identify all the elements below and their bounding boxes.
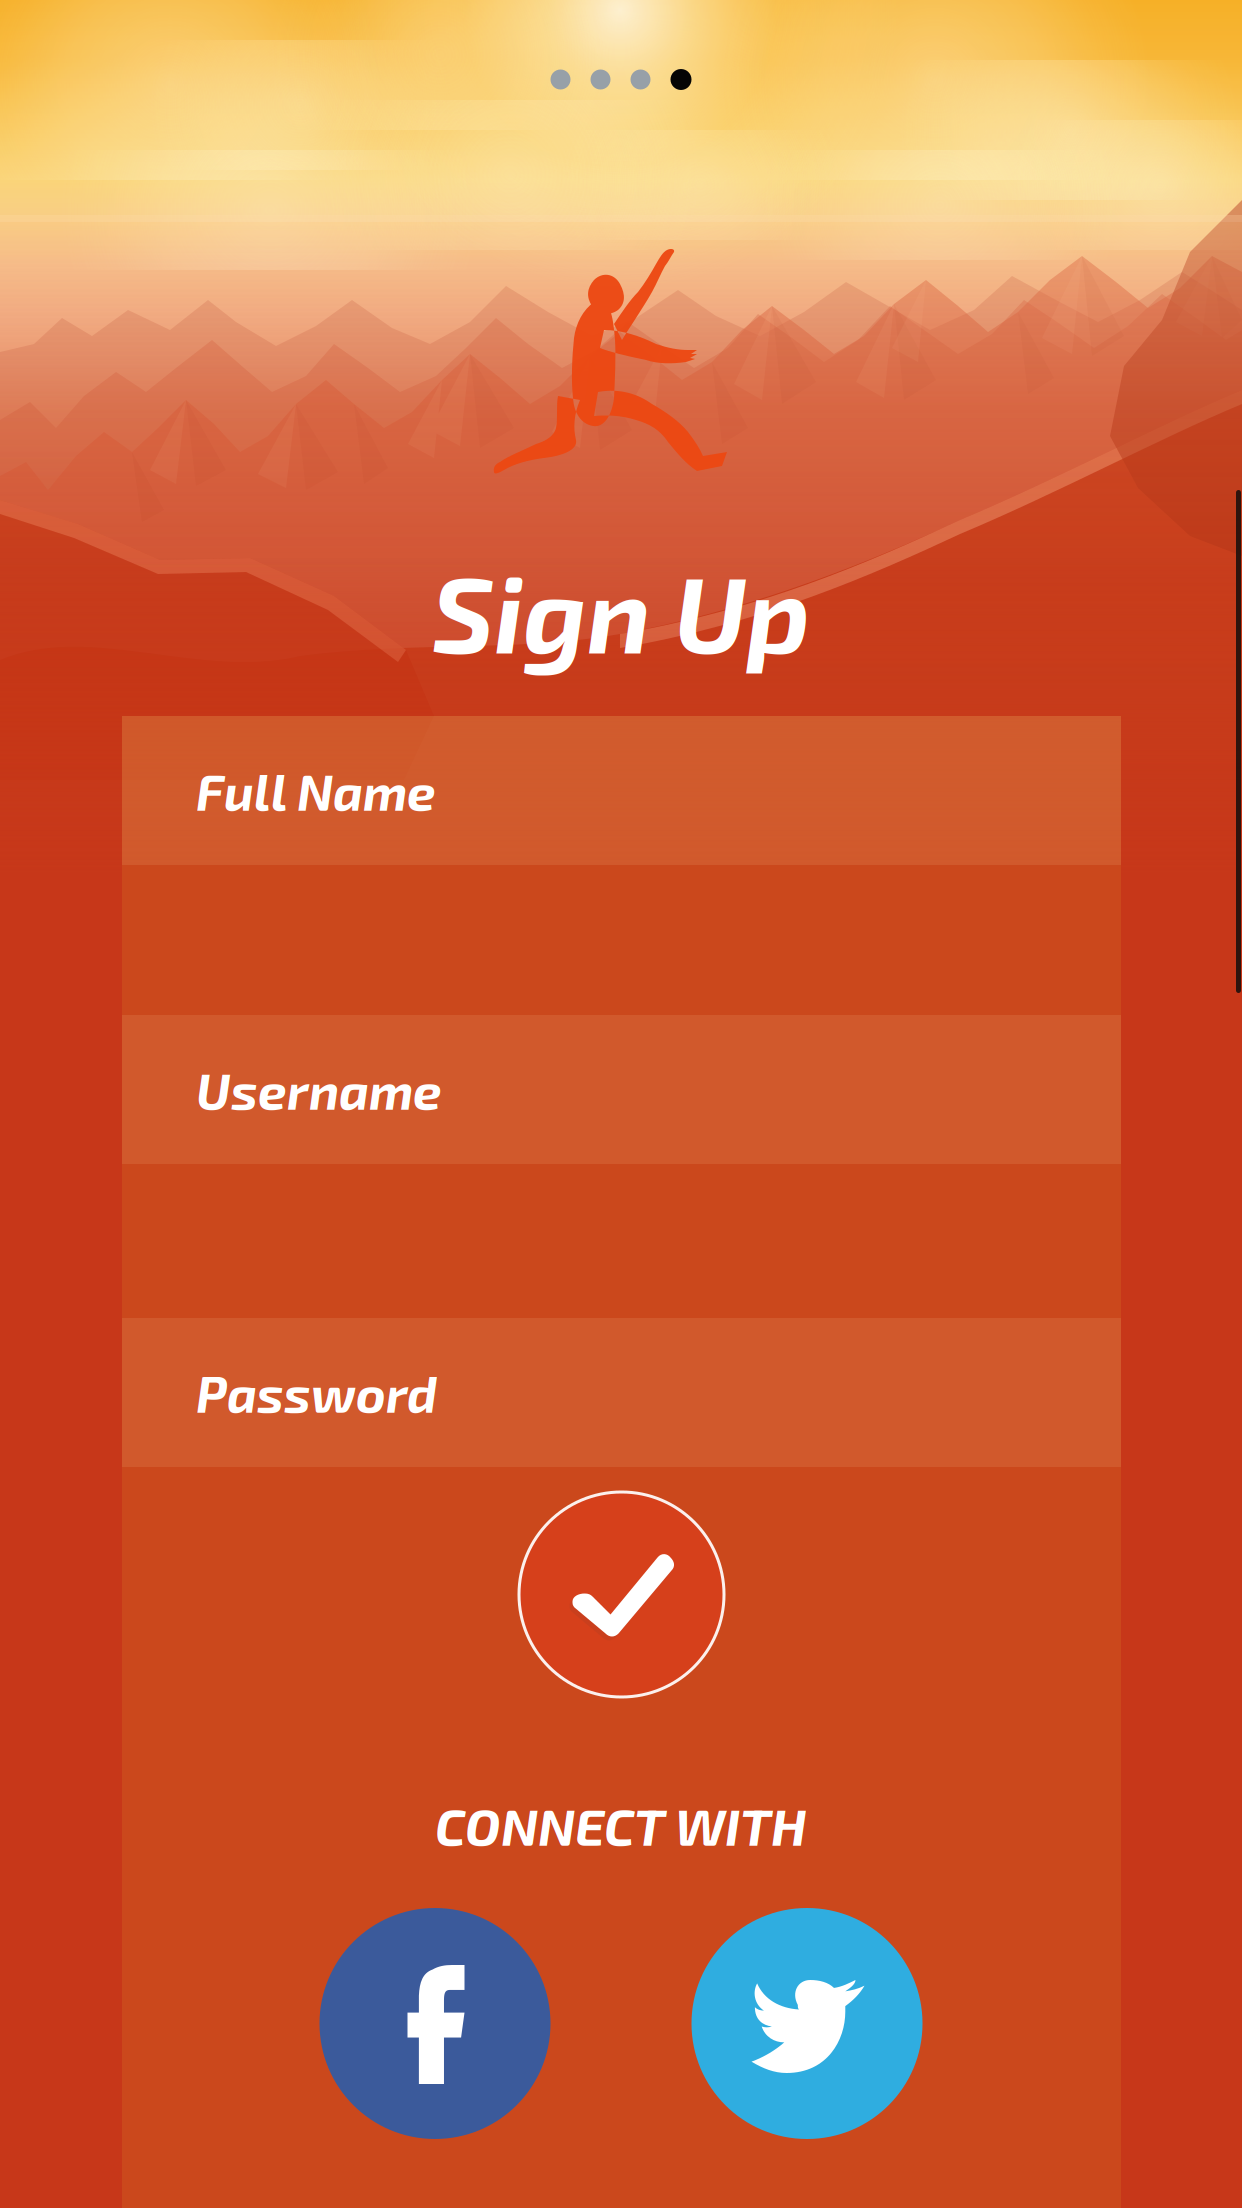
button[interactable]: Connect with Twitter bbox=[691, 1908, 922, 2139]
button[interactable]: Submit bbox=[519, 1492, 724, 1697]
button[interactable]: Username bbox=[122, 1015, 1121, 1164]
button[interactable]: Full Name bbox=[122, 716, 1121, 865]
staticText: Full Name bbox=[196, 760, 436, 821]
button[interactable]: Password bbox=[122, 1318, 1121, 1467]
button[interactable]: Connect with Facebook bbox=[319, 1908, 550, 2139]
staticText: Password bbox=[196, 1362, 437, 1423]
staticText: CONNECT WITH bbox=[435, 1794, 807, 1856]
staticText: Sign Up bbox=[432, 547, 810, 675]
staticText: Username bbox=[196, 1059, 442, 1120]
